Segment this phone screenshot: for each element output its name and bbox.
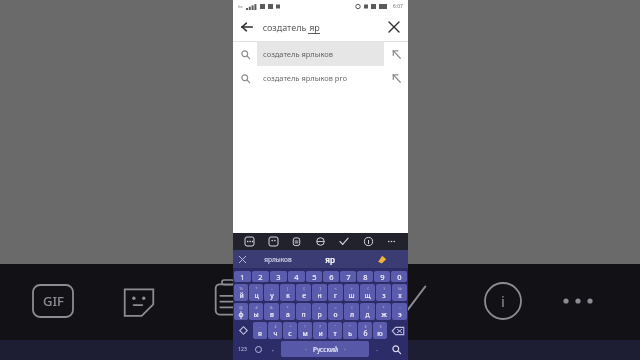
button[interactable]: создатель ярлыков: [233, 42, 408, 66]
button[interactable]: создатель ярлыков pro: [233, 66, 408, 90]
button[interactable]: .: [370, 341, 384, 357]
button[interactable]: *: [280, 303, 295, 320]
button[interactable]: 2: [252, 271, 269, 282]
staticText: ярлыков: [264, 255, 292, 264]
staticText: п: [301, 310, 306, 319]
button[interactable]: More options: [558, 294, 598, 308]
button[interactable]: 5: [306, 271, 322, 282]
button[interactable]: Translate: [313, 234, 328, 249]
button[interactable]: 123: [234, 341, 251, 357]
staticText: й: [239, 291, 244, 300]
button[interactable]: !: [298, 322, 312, 339]
staticText: +: [318, 305, 321, 310]
button[interactable]: (: [344, 303, 359, 320]
button[interactable]: #: [249, 303, 263, 320]
staticText: #: [255, 305, 258, 310]
button[interactable]: <: [328, 284, 343, 301]
button[interactable]: Done: [398, 286, 424, 312]
staticText: у: [270, 291, 274, 300]
staticText: с: [288, 329, 292, 338]
staticText: *: [382, 305, 385, 310]
button[interactable]: Clear: [380, 13, 408, 41]
button[interactable]: ?: [313, 322, 327, 339]
staticText: ): [383, 286, 385, 291]
button[interactable]: Collapse: [233, 250, 251, 268]
button[interactable]: Info: [484, 282, 522, 320]
button[interactable]: ярлыков: [251, 250, 304, 268]
button[interactable]: =: [328, 303, 343, 320]
staticText: 6:07: [393, 3, 403, 10]
button[interactable]: Keyboard: [242, 234, 257, 249]
button[interactable]: ): [376, 284, 391, 301]
button[interactable]: (: [360, 284, 375, 301]
button[interactable]: [356, 250, 408, 268]
staticText: &: [270, 305, 273, 310]
staticText: *: [255, 286, 258, 291]
button[interactable]: >: [344, 284, 359, 301]
button[interactable]: -: [253, 322, 267, 339]
button[interactable]: Search: [385, 341, 407, 357]
button[interactable]: ): [360, 303, 375, 320]
button[interactable]: Stickers: [122, 284, 156, 318]
button[interactable]: Backspace: [388, 322, 407, 339]
button[interactable]: Stickers: [266, 234, 281, 249]
staticText: –: [271, 286, 273, 291]
button[interactable]: 7: [340, 271, 356, 282]
button[interactable]: Back: [233, 13, 261, 41]
staticText: и: [318, 329, 323, 338]
staticText: 3: [276, 272, 281, 282]
staticText: ': [335, 324, 336, 329]
button[interactable]: ": [343, 322, 357, 339]
button[interactable]: £: [268, 322, 282, 339]
staticText: р: [317, 310, 322, 319]
staticText: -: [303, 305, 305, 310]
button[interactable]: Grammar check: [337, 234, 352, 249]
button[interactable]: *: [249, 284, 263, 301]
button[interactable]: ,: [266, 341, 280, 357]
staticText: л: [350, 310, 354, 319]
button[interactable]: More options: [384, 234, 399, 249]
button[interactable]: GIF: [33, 285, 73, 317]
button[interactable]: создатель: [261, 13, 380, 41]
button[interactable]: [: [296, 284, 311, 301]
staticText: $: [364, 324, 367, 329]
staticText: т: [333, 329, 337, 338]
button[interactable]: 9: [374, 271, 390, 282]
button[interactable]: ^: [283, 322, 297, 339]
button[interactable]: |: [280, 284, 295, 301]
staticText: создатель ярлыков: [263, 49, 333, 59]
button[interactable]: –: [264, 284, 279, 301]
button[interactable]: 4: [288, 271, 305, 282]
staticText: а: [286, 310, 290, 319]
button[interactable]: Clipboard: [214, 280, 242, 316]
button[interactable]: €: [373, 322, 387, 339]
staticText: 6: [329, 272, 334, 282]
staticText: 7: [346, 272, 351, 282]
button[interactable]: яр: [304, 250, 356, 268]
button[interactable]: $: [358, 322, 372, 339]
button[interactable]: :: [392, 303, 407, 320]
button[interactable]: 8: [357, 271, 373, 282]
button[interactable]: Clipboard: [289, 234, 304, 249]
button[interactable]: Info: [361, 234, 376, 249]
button[interactable]: @: [234, 303, 248, 320]
button[interactable]: 3: [270, 271, 287, 282]
button[interactable]: +: [312, 303, 327, 320]
button[interactable]: ]: [312, 284, 327, 301]
staticText: @: [239, 305, 243, 310]
staticText: е: [302, 291, 306, 300]
button[interactable]: 6: [323, 271, 339, 282]
button[interactable]: ‹: [281, 341, 369, 357]
button[interactable]: *: [376, 303, 391, 320]
button[interactable]: %: [234, 284, 248, 301]
button[interactable]: Shift: [234, 322, 252, 339]
staticText: GIF: [43, 292, 64, 310]
button[interactable]: -: [296, 303, 311, 320]
button[interactable]: 1: [234, 271, 251, 282]
button[interactable]: Emoji: [252, 341, 265, 357]
button[interactable]: ': [328, 322, 342, 339]
staticText: %: [239, 286, 243, 291]
button[interactable]: №: [392, 284, 407, 301]
button[interactable]: 0: [391, 271, 407, 282]
button[interactable]: &: [264, 303, 279, 320]
